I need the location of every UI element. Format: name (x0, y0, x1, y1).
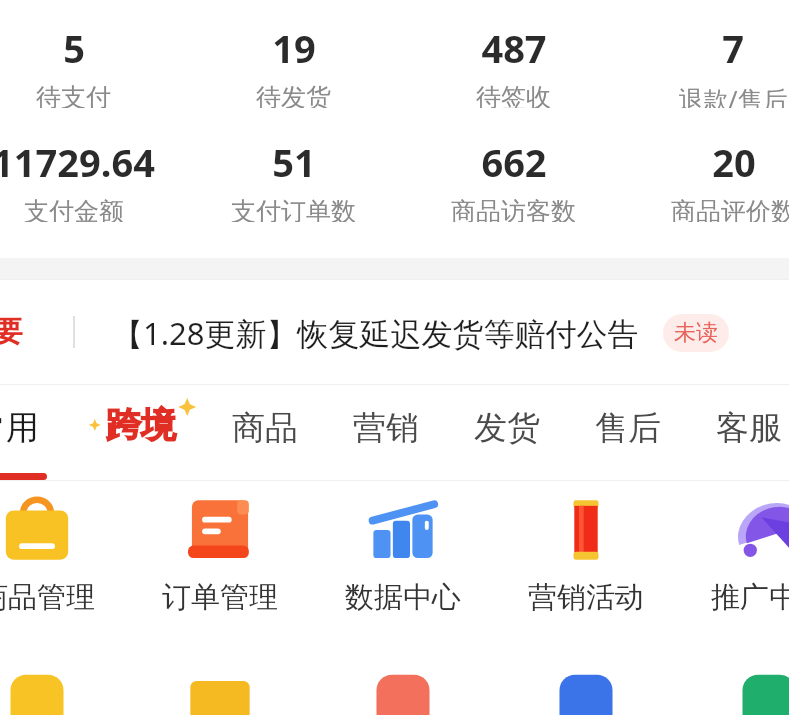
button[interactable]: 营销 (331, 385, 441, 480)
button[interactable]: 工具 3 (364, 667, 442, 715)
staticText: 商品管理 (0, 579, 95, 616)
staticText: 支付订单数 (231, 196, 356, 222)
button[interactable]: 20 (623, 136, 789, 222)
button[interactable]: 工具 2 (181, 667, 259, 715)
staticText: 推广中心 (711, 579, 789, 616)
button[interactable]: 推广中心 (678, 491, 789, 641)
staticText: 待发货 (256, 82, 331, 108)
button[interactable]: 5 (0, 22, 183, 108)
button[interactable]: 11729.64 (0, 136, 183, 222)
staticText: 487 (481, 22, 547, 74)
button[interactable]: 订单管理 (129, 491, 311, 641)
button[interactable]: 7 (623, 22, 789, 108)
button[interactable]: 发货 (452, 385, 562, 480)
staticText: 商品 (232, 407, 298, 449)
button[interactable]: 商品管理 (0, 491, 128, 641)
staticText: 【1.28更新】恢复延迟发货等赔付公告 (112, 312, 639, 354)
staticText: 重要 (0, 313, 23, 351)
button[interactable]: 商品 (210, 385, 320, 480)
staticText: 退款/售后 (678, 82, 788, 108)
staticText: 待签收 (476, 82, 551, 108)
button[interactable]: 营销活动 (495, 491, 677, 641)
staticText: 常用 (0, 407, 39, 449)
staticText: 商品访客数 (451, 196, 576, 222)
button[interactable]: 重要 (0, 280, 789, 384)
button[interactable]: 工具 5 (730, 667, 789, 715)
staticText: 售后 (595, 407, 661, 449)
staticText: 跨境 (106, 403, 176, 447)
staticText: 7 (722, 22, 744, 74)
staticText: 19 (272, 22, 316, 74)
staticText: 发货 (474, 407, 540, 449)
button[interactable]: 常用 (0, 385, 48, 480)
button[interactable]: 客服 (694, 385, 789, 480)
button[interactable]: 19 (183, 22, 403, 108)
staticText: 20 (712, 136, 756, 188)
staticText: 662 (481, 136, 547, 188)
button[interactable]: 跨境 (86, 385, 196, 480)
staticText: 5 (63, 22, 85, 74)
staticText: 订单管理 (162, 579, 278, 616)
button[interactable]: 数据中心 (312, 491, 494, 641)
button[interactable]: 51 (183, 136, 403, 222)
button[interactable]: 工具 1 (0, 667, 76, 715)
staticText: 营销活动 (528, 579, 644, 616)
button[interactable]: 487 (403, 22, 623, 108)
staticText: 支付金额 (24, 196, 124, 222)
staticText: 商品评价数 (671, 196, 789, 222)
staticText: 未读 (674, 319, 718, 347)
staticText: 营销 (353, 407, 419, 449)
button[interactable]: 售后 (573, 385, 683, 480)
staticText: 11729.64 (0, 136, 155, 188)
button[interactable]: 662 (403, 136, 623, 222)
staticText: 51 (272, 136, 316, 188)
staticText: 待支付 (36, 82, 111, 108)
button[interactable]: 工具 4 (547, 667, 625, 715)
staticText: 数据中心 (345, 579, 461, 616)
staticText: 客服 (716, 407, 782, 449)
